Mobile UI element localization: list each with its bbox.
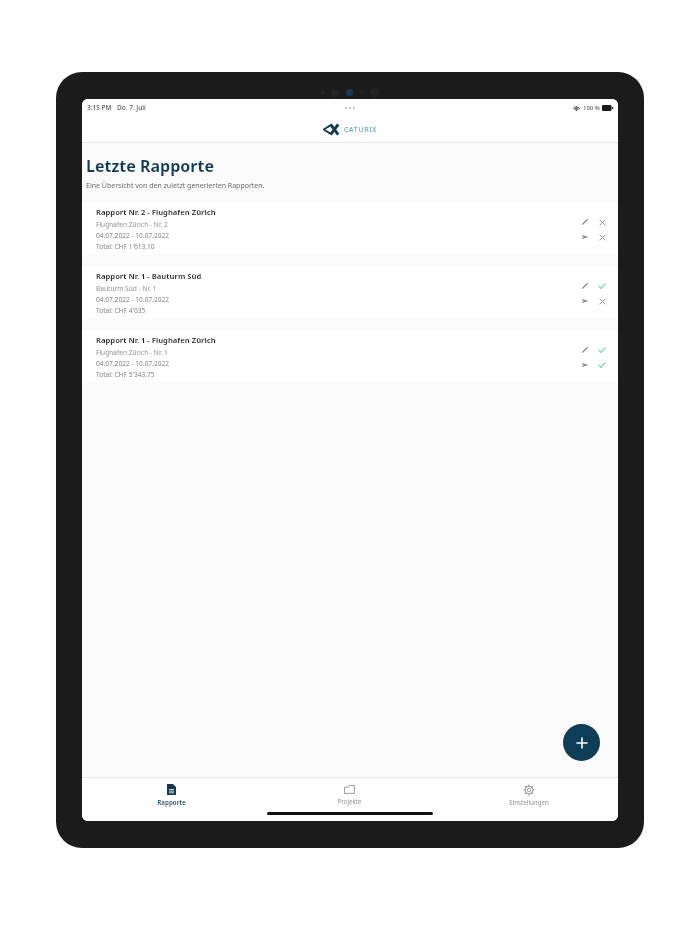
button[interactable]: Genehmigt xyxy=(597,281,607,291)
staticText: Total: CHF 5'343.75 xyxy=(96,370,155,379)
button[interactable]: Rapport Nr. 1 - Flughafen Zürich xyxy=(82,331,618,383)
staticText: 100 % xyxy=(583,104,600,112)
staticText: Bauturm Süd - Nr. 1 xyxy=(96,284,157,293)
button[interactable]: Senden xyxy=(580,296,590,306)
staticText: Letzte Rapporte xyxy=(86,155,214,177)
button[interactable]: Gesendet xyxy=(597,360,607,370)
button[interactable]: Neuen Rapport erstellen xyxy=(563,724,600,761)
button[interactable]: Nicht gesendet xyxy=(597,296,607,306)
button[interactable]: Projekte xyxy=(260,778,439,812)
staticText: 04.07.2022 - 10.07.2022 xyxy=(96,295,169,304)
staticText: Rapport Nr. 2 - Flughafen Zürich xyxy=(96,207,216,217)
staticText: Rapport Nr. 1 - Bauturm Süd xyxy=(96,271,202,281)
button[interactable]: Rapport Nr. 1 - Bauturm Süd xyxy=(82,267,618,319)
button[interactable]: Rapport Nr. 2 - Flughafen Zürich xyxy=(82,203,618,255)
staticText: 04.07.2022 - 10.07.2022 xyxy=(96,359,169,368)
button[interactable]: Genehmigt xyxy=(597,345,607,355)
button[interactable]: Rapporte xyxy=(82,778,260,812)
button[interactable]: Bearbeiten xyxy=(580,345,590,355)
button[interactable]: Nicht gesendet xyxy=(597,232,607,242)
staticText: Flughafen Zürich - Nr. 1 xyxy=(96,348,168,357)
staticText: Do. 7. Juli xyxy=(117,103,146,112)
staticText: Total: CHF 4'035 xyxy=(96,306,146,315)
button[interactable]: Bearbeiten xyxy=(580,281,590,291)
button[interactable]: Nicht genehmigt xyxy=(597,217,607,227)
staticText: Rapport Nr. 1 - Flughafen Zürich xyxy=(96,335,216,345)
button[interactable]: Senden xyxy=(580,360,590,370)
button[interactable]: Senden xyxy=(580,232,590,242)
staticText: Flughafen Zürich - Nr. 2 xyxy=(96,220,168,229)
staticText: Projekte xyxy=(337,797,362,805)
staticText: 3:15 PM xyxy=(87,103,112,112)
staticText: Eine Übersicht von den zuletzt generiert… xyxy=(86,181,265,191)
staticText: CATURIX xyxy=(344,125,378,135)
staticText: Einstellungen xyxy=(509,798,549,806)
staticText: 04.07.2022 - 10.07.2022 xyxy=(96,231,169,240)
button[interactable]: Bearbeiten xyxy=(580,217,590,227)
staticText: Total: CHF 1'613.10 xyxy=(96,242,155,251)
button[interactable]: Einstellungen xyxy=(439,778,618,812)
staticText: Rapporte xyxy=(157,798,186,806)
